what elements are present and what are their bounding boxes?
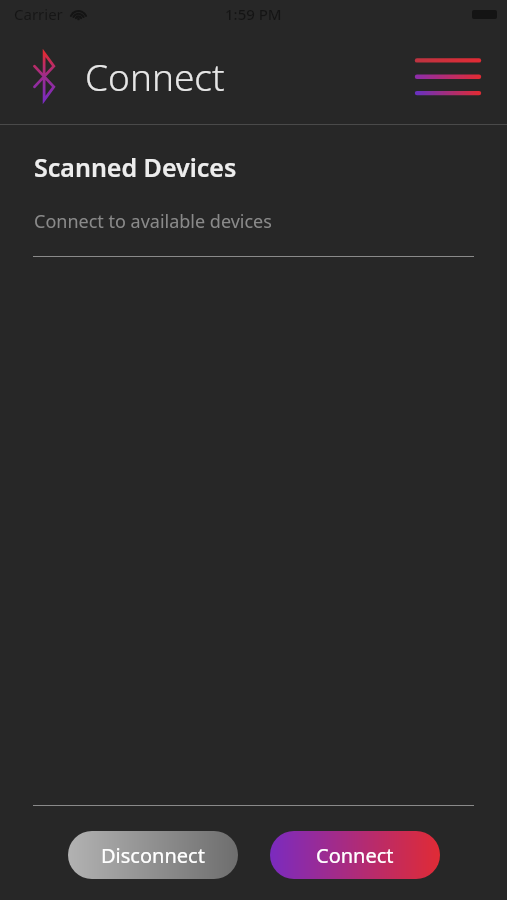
staticText: Connect	[85, 51, 225, 101]
staticText: Connect to available devices	[34, 209, 272, 234]
staticText: 1:59 PM	[225, 4, 282, 24]
staticText: Connect	[316, 842, 394, 869]
button[interactable]: Connect	[270, 831, 440, 879]
button[interactable]: Disconnect	[68, 831, 238, 879]
staticText: Scanned Devices	[34, 150, 237, 184]
button[interactable]: Menu	[411, 47, 485, 105]
staticText: Carrier	[14, 4, 63, 24]
staticText: Disconnect	[101, 842, 205, 869]
